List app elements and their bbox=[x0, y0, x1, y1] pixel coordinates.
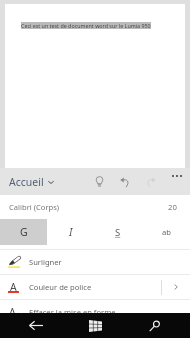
button[interactable]: Search bbox=[125, 313, 184, 338]
staticText: A bbox=[10, 280, 17, 294]
staticText: 20 bbox=[168, 202, 177, 213]
staticText: Effacer la mise en forme bbox=[29, 307, 116, 317]
button[interactable]: A bbox=[0, 300, 190, 325]
staticText: Accueil bbox=[9, 175, 44, 189]
button[interactable]: Ceci est un test de document word sur le… bbox=[5, 4, 185, 168]
staticText: S bbox=[115, 226, 121, 239]
button[interactable]: ab bbox=[142, 219, 190, 245]
staticText: Calibri (Corps) bbox=[9, 202, 60, 212]
staticText: Surligner bbox=[29, 257, 62, 267]
button[interactable]: Back bbox=[6, 313, 66, 338]
button[interactable]: S bbox=[94, 219, 142, 245]
staticText: G bbox=[20, 225, 28, 239]
staticText: A bbox=[9, 305, 16, 319]
button[interactable]: More options bbox=[164, 168, 190, 195]
button[interactable]: Tell me bbox=[86, 168, 112, 195]
staticText: ab bbox=[162, 227, 171, 237]
button[interactable]: G bbox=[0, 219, 47, 245]
button[interactable]: Accueil bbox=[0, 168, 62, 195]
staticText: I bbox=[69, 225, 73, 239]
button[interactable]: Undo bbox=[112, 168, 138, 195]
staticText: Couleur de police bbox=[29, 282, 92, 292]
button[interactable]: I bbox=[47, 219, 94, 245]
button[interactable]: A bbox=[0, 275, 190, 300]
staticText: Ceci est un test de document word sur le… bbox=[21, 22, 151, 29]
button[interactable]: Start bbox=[66, 313, 125, 338]
button[interactable]: Surligner bbox=[0, 250, 190, 275]
button[interactable]: Calibri (Corps) bbox=[0, 195, 190, 219]
